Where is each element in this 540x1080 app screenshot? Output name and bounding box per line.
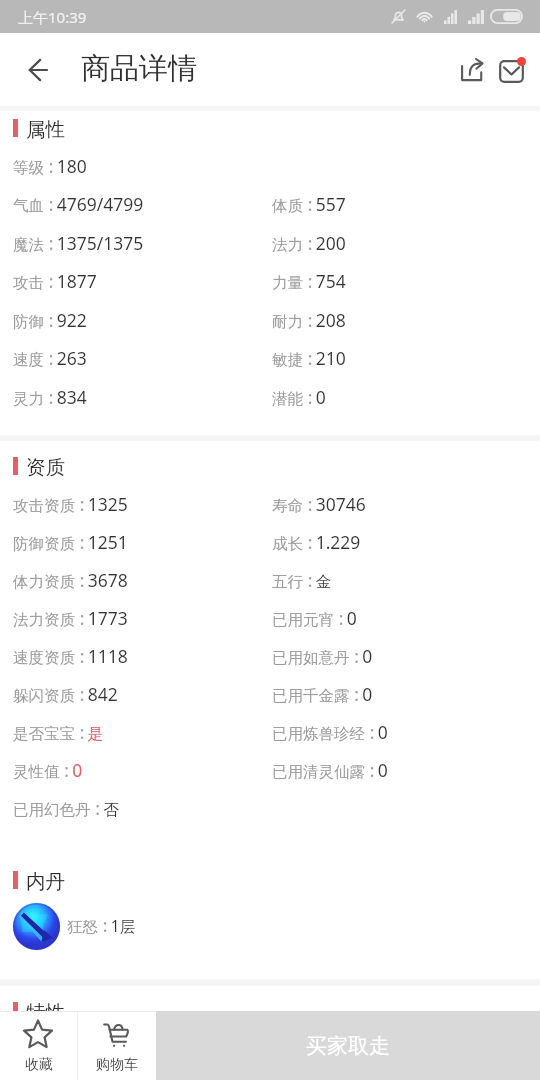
staticText: 收藏 [25,1056,53,1074]
staticText: 已用幻色丹 :否 [13,796,119,820]
staticText: 已用千金露 :0 [272,682,373,706]
staticText: 攻击资质 :1325 [13,492,128,516]
staticText: 防御资质 :1251 [13,530,128,554]
staticText: 狂怒 :1层 [67,913,136,937]
staticText: 攻击 :1877 [13,269,97,293]
button[interactable]: Messages [492,50,532,90]
button[interactable]: Share [452,50,492,90]
staticText: 灵力 :834 [13,385,87,409]
staticText: 气血 :4769/4799 [13,192,144,216]
staticText: 已用炼兽珍经 :0 [272,720,388,744]
staticText: 内丹 [26,869,65,894]
staticText: 灵性值 :0 [13,758,83,782]
staticText: 买家取走 [306,1033,390,1059]
staticText: 魔法 :1375/1375 [13,231,144,255]
staticText: 潜能 :0 [272,385,326,409]
button[interactable]: 收藏 [0,1011,77,1080]
button[interactable]: Back [16,48,60,92]
staticText: 已用如意丹 :0 [272,644,373,668]
staticText: 资质 [26,455,65,480]
button[interactable]: 买家取走 [156,1011,540,1080]
staticText: 商品详情 [81,50,197,87]
staticText: 躲闪资质 :842 [13,682,118,706]
staticText: 等级 :180 [13,154,87,178]
staticText: 力量 :754 [272,269,346,293]
staticText: 速度 :263 [13,346,87,370]
staticText: 已用元宵 :0 [272,606,357,630]
staticText: 五行 :金 [272,568,332,592]
staticText: 寿命 :30746 [272,492,366,516]
staticText: 是否宝宝 :是 [13,720,104,744]
staticText: 法力 :200 [272,231,346,255]
staticText: 耐力 :208 [272,308,346,332]
staticText: 已用清灵仙露 :0 [272,758,388,782]
staticText: 属性 [26,117,65,142]
staticText: 特性 [26,1000,65,1025]
button[interactable]: 狂怒 :1层 [0,903,540,950]
staticText: 速度资质 :1118 [13,644,128,668]
staticText: 敏捷 :210 [272,346,346,370]
button[interactable]: 购物车 [78,1011,156,1080]
staticText: 体质 :557 [272,192,346,216]
staticText: 成长 :1.229 [272,530,361,554]
staticText: 法力资质 :1773 [13,606,128,630]
staticText: 防御 :922 [13,308,87,332]
staticText: 体力资质 :3678 [13,568,128,592]
staticText: 上午10:39 [18,7,87,27]
staticText: 购物车 [96,1056,138,1074]
